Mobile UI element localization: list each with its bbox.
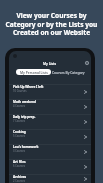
staticText: 6 Courses: [13, 164, 25, 168]
button[interactable]: Pick Up Where I left: [9, 84, 91, 99]
staticText: Pick Up Where I left: [13, 85, 44, 89]
staticText: Italy trip prep.: [13, 115, 36, 119]
button[interactable]: Options: [84, 60, 90, 66]
staticText: 7 Courses: [13, 119, 25, 123]
button[interactable]: Art Files: [9, 159, 91, 174]
button[interactable]: My Personal Lists: [16, 69, 51, 75]
staticText: 4 Courses: [13, 104, 25, 108]
staticText: Art Files: [13, 160, 26, 164]
staticText: 3 Courses: [13, 149, 25, 153]
staticText: 2 Courses: [13, 179, 25, 183]
staticText: Cooking: [13, 130, 26, 134]
button[interactable]: Archives: [9, 174, 91, 183]
staticText: 10 Courses: [13, 89, 27, 93]
staticText: View your Courses by Category or by the …: [0, 11, 103, 37]
button[interactable]: Italy trip prep.: [9, 114, 91, 129]
staticText: Archives: [13, 175, 27, 179]
staticText: 5 Courses: [13, 134, 25, 138]
button[interactable]: Courses By Category: [51, 69, 86, 75]
button[interactable]: Cooking: [9, 129, 91, 144]
button[interactable]: Math weekend: [9, 99, 91, 114]
staticText: Lou's homework: [13, 145, 39, 149]
staticText: Courses By Category: [52, 70, 85, 74]
staticText: Math weekend: [13, 100, 37, 104]
staticText: My Personal Lists: [20, 70, 48, 74]
staticText: My Lists: [43, 61, 57, 65]
button[interactable]: Lou's homework: [9, 144, 91, 159]
